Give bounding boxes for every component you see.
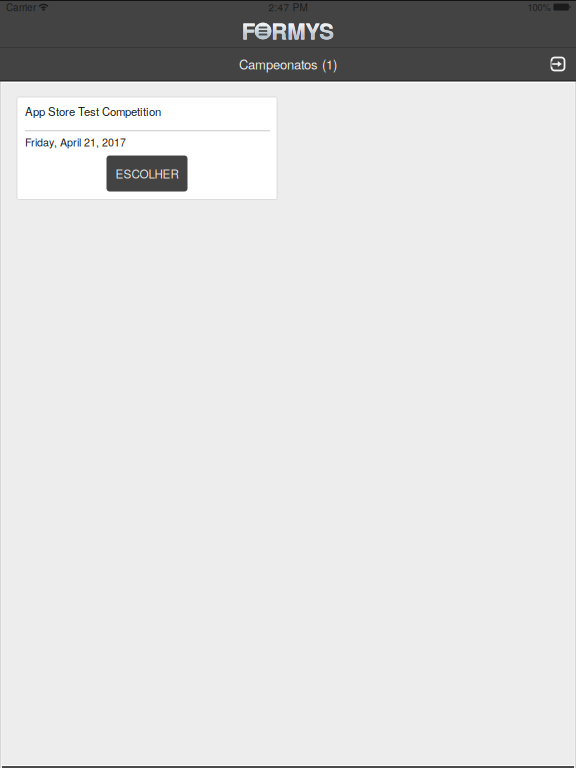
button[interactable]: Sair [540,48,576,79]
staticText: Friday, April 21, 2017 [25,134,126,149]
staticText: ESCOLHER [115,165,178,182]
staticText: App Store Test Competition [25,103,161,119]
staticText: Carrier [6,0,36,14]
staticText: F [242,15,255,46]
button[interactable]: ESCOLHER [106,155,187,191]
staticText: RMYS [271,15,334,46]
staticText: 100% [527,0,550,14]
staticText: 2:47 PM [268,0,307,14]
staticText: F [242,15,255,46]
staticText: Campeonatos (1) [239,55,337,73]
staticText: RMYS [271,15,334,46]
